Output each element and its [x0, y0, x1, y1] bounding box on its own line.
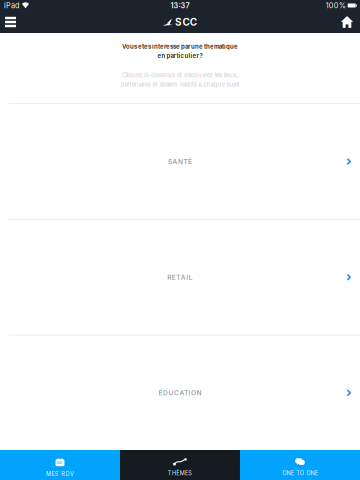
- staticText: SANTÉ: [168, 157, 192, 166]
- button[interactable]: RETAIL: [0, 220, 360, 334]
- button[interactable]: THÈMES: [120, 450, 240, 480]
- staticText: SCC: [175, 16, 197, 28]
- staticText: iPad: [4, 1, 19, 10]
- staticText: ÉDUCATION: [158, 389, 201, 397]
- button[interactable]: MES RDV: [0, 450, 120, 480]
- staticText: partenaires et ateliers relatifs à chaqu…: [120, 81, 239, 88]
- staticText: ONE TO ONE: [282, 470, 318, 477]
- staticText: 13:37: [170, 1, 189, 10]
- staticText: en particulier ?: [157, 52, 202, 60]
- staticText: 100%: [326, 1, 346, 10]
- staticText: MES RDV: [46, 470, 74, 477]
- staticText: Cliquez ci-dessous et découvrez les lieu…: [122, 71, 238, 79]
- button[interactable]: Home: [334, 11, 360, 33]
- button[interactable]: SANTÉ: [0, 104, 360, 219]
- button[interactable]: Menu: [0, 11, 21, 33]
- button[interactable]: ONE TO ONE: [240, 450, 360, 480]
- staticText: Vous êtes intéressé par une thématique: [122, 43, 238, 50]
- button[interactable]: ÉDUCATION: [0, 336, 360, 450]
- staticText: THÈMES: [168, 470, 192, 477]
- staticText: RETAIL: [167, 273, 193, 281]
